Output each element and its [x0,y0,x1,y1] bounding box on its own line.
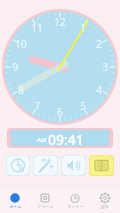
button[interactable]: Timer [6,155,30,176]
staticText: 7 [34,99,40,113]
button[interactable]: AM [7,128,113,148]
staticText: 11 [31,21,43,35]
button[interactable]: ホーム [0,189,30,213]
staticText: ホーム [9,204,22,209]
staticText: 5 [80,99,86,113]
staticText: アラーム [37,204,54,209]
staticText: AM [37,136,47,144]
button[interactable]: Effects [33,155,58,176]
button[interactable]: Split screen [89,155,114,176]
staticText: 3 [102,60,108,74]
staticText: 9 [12,60,18,74]
staticText: 8 [18,83,24,97]
staticText: 2 [96,37,102,51]
staticText: 12 [54,15,66,29]
button[interactable]: アラーム [30,189,60,213]
staticText: 6 [57,105,63,119]
button[interactable]: タイマー [60,189,90,213]
staticText: 10 [15,37,27,51]
staticText: 09:41 [48,130,84,146]
staticText: 4 [96,83,102,97]
button[interactable]: 設定 [90,189,120,213]
staticText: 設定 [101,204,109,209]
button[interactable]: Volume [61,155,86,176]
staticText: タイマー [67,204,84,209]
staticText: 1 [80,21,86,35]
